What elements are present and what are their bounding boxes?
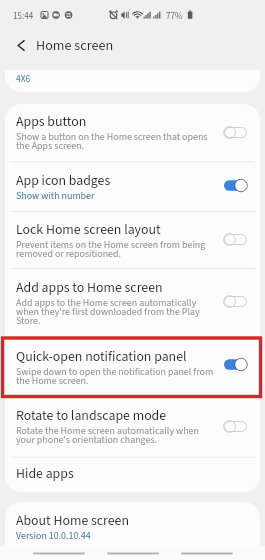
button[interactable]: Rotate to landscape mode	[5, 398, 260, 457]
button[interactable]: Navigate up	[11, 35, 31, 55]
staticText: 15:44	[13, 10, 34, 22]
staticText: 4X6	[16, 72, 31, 86]
staticText: Prevent items on the Home screen from be…	[16, 238, 206, 261]
button[interactable]: App icon badges	[5, 163, 260, 213]
staticText: Add apps to the Home screen automaticall…	[16, 296, 200, 328]
staticText: Rotate to landscape mode	[16, 406, 167, 426]
button[interactable]: Toggle off	[224, 234, 247, 245]
staticText: Rotate the Home screen automatically whe…	[16, 424, 199, 447]
button[interactable]: Toggle on	[224, 359, 247, 370]
staticText: 77%	[166, 10, 183, 22]
staticText: Quick-open notification panel	[16, 347, 187, 367]
button[interactable]: Toggle on	[224, 180, 247, 191]
staticText: Hide apps	[16, 464, 74, 484]
staticText: Swipe down to open the notification pane…	[16, 365, 214, 388]
button[interactable]: Add apps to Home screen	[5, 268, 260, 337]
staticText: App icon badges	[16, 171, 111, 191]
button[interactable]: Toggle off	[224, 421, 247, 432]
button[interactable]: Toggle off	[224, 127, 247, 138]
button[interactable]: Hide apps	[5, 457, 260, 491]
staticText: Show with number	[16, 189, 95, 203]
staticText: Show a button on the Home screen that op…	[16, 130, 208, 153]
button[interactable]: 4X6	[5, 70, 260, 92]
button[interactable]: Toggle off	[224, 296, 247, 307]
staticText: Version 10.0.10.44	[16, 529, 91, 543]
button[interactable]: About Home screen	[5, 502, 260, 546]
staticText: Add apps to Home screen	[16, 278, 163, 298]
button[interactable]: Apps button	[5, 104, 260, 162]
staticText: Apps button	[16, 112, 87, 132]
button[interactable]: Lock Home screen layout	[5, 212, 260, 269]
staticText: Home screen	[36, 36, 114, 56]
staticText: About Home screen	[16, 511, 129, 531]
button[interactable]: Quick-open notification panel	[5, 337, 260, 398]
staticText: Lock Home screen layout	[16, 220, 161, 240]
